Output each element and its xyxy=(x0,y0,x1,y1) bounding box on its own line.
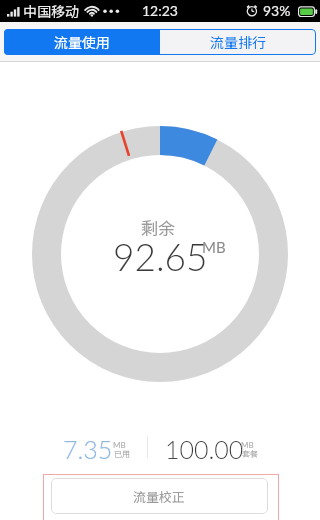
button[interactable]: 流量排行 xyxy=(160,29,316,55)
staticText: 100.00 xyxy=(165,434,244,464)
staticText: MB xyxy=(202,238,226,256)
staticText: 93% xyxy=(263,2,291,19)
staticText: MB xyxy=(241,440,254,450)
button[interactable]: 流量使用 xyxy=(4,29,160,55)
staticText: 流量使用 xyxy=(54,32,110,52)
staticText: 流量排行 xyxy=(210,32,266,52)
staticText: 套餐 xyxy=(242,448,258,460)
staticText: 已用 xyxy=(114,448,130,460)
staticText: 流量校正 xyxy=(133,487,186,506)
button[interactable]: 流量校正 xyxy=(51,478,268,514)
staticText: 7.35 xyxy=(63,434,113,464)
staticText: 92.65 xyxy=(113,234,208,278)
staticText: 中国移动 xyxy=(23,1,79,21)
staticText: 12:23 xyxy=(142,2,178,19)
staticText: MB xyxy=(113,440,126,450)
staticText: 剩余 xyxy=(141,215,175,240)
